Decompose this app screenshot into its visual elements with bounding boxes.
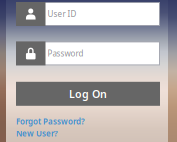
button[interactable]: New User? (16, 127, 140, 139)
staticText: New User? (16, 128, 58, 139)
button[interactable]: Log On (16, 82, 160, 106)
staticText: Log On (69, 87, 107, 101)
button[interactable]: Password (16, 41, 160, 65)
button[interactable]: Forgot Password? (16, 115, 140, 127)
staticText: User ID (47, 9, 76, 19)
button[interactable]: User ID (16, 2, 160, 26)
staticText: Forgot Password? (16, 116, 85, 127)
staticText: Password (47, 48, 83, 59)
